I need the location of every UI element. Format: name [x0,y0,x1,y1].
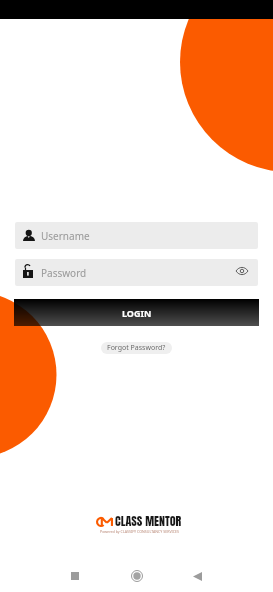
staticText: CLASS MENTOR [115,512,182,530]
staticText: Username [41,229,90,243]
button[interactable]: Recents [61,562,89,590]
button[interactable]: Username [15,222,258,249]
staticText: Forgot Password? [107,343,166,353]
button[interactable]: Password [15,259,258,286]
button[interactable]: Show password [235,264,249,278]
button[interactable]: Forgot Password? [101,342,172,354]
staticText: Powered by CLASSIFY CONSULTANCY SERVICES [100,529,180,534]
staticText: LOGIN [122,307,152,319]
staticText: Password [41,266,87,280]
button[interactable]: Home [123,562,151,590]
button[interactable]: LOGIN [14,299,259,326]
button[interactable]: Back [183,562,211,590]
